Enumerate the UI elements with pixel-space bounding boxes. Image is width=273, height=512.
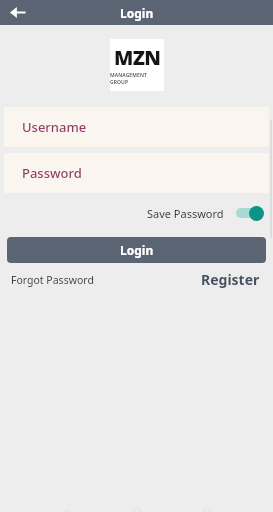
staticText: Login bbox=[120, 242, 154, 258]
staticText: MANAGEMENT GROUP bbox=[110, 72, 164, 86]
button[interactable]: Save Password bbox=[147, 205, 264, 221]
staticText: Save Password bbox=[147, 206, 224, 221]
staticText: Login bbox=[120, 5, 154, 21]
staticText: Forgot Password bbox=[11, 273, 94, 287]
staticText: Register bbox=[201, 270, 260, 289]
staticText: Username bbox=[22, 118, 87, 136]
button[interactable]: Username bbox=[4, 107, 269, 147]
button[interactable]: Register bbox=[201, 270, 260, 289]
button[interactable]: Back bbox=[0, 0, 34, 25]
button[interactable]: Login bbox=[7, 237, 266, 263]
staticText: MZN bbox=[114, 44, 161, 71]
button[interactable]: Forgot Password bbox=[11, 273, 94, 287]
staticText: Password bbox=[22, 164, 82, 182]
button[interactable]: Password bbox=[4, 153, 269, 193]
